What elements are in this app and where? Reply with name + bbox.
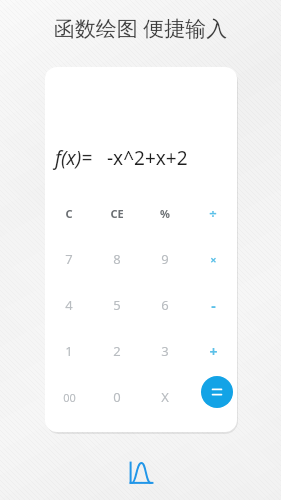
staticText: f(x)=	[55, 145, 93, 171]
button[interactable]: X	[141, 374, 189, 420]
staticText: CE	[110, 206, 124, 221]
button[interactable]: 3	[141, 328, 189, 374]
staticText: 9	[161, 250, 169, 268]
button[interactable]: 7	[45, 236, 93, 282]
button[interactable]: 00	[45, 374, 93, 420]
button[interactable]: C	[45, 190, 93, 236]
button[interactable]: Equals	[201, 376, 233, 408]
staticText: ×	[210, 252, 217, 267]
staticText: 函数绘图 便捷输入	[0, 14, 281, 43]
staticText: -	[211, 296, 216, 315]
staticText: ÷	[209, 204, 217, 222]
button[interactable]: %	[141, 190, 189, 236]
button[interactable]: -	[189, 282, 237, 328]
button[interactable]: 4	[45, 282, 93, 328]
button[interactable]: ÷	[189, 190, 237, 236]
staticText: C	[65, 206, 73, 221]
button[interactable]: 2	[93, 328, 141, 374]
staticText: 5	[113, 296, 121, 314]
staticText: 3	[161, 342, 169, 360]
staticText: 0	[113, 388, 121, 406]
staticText: 7	[65, 250, 73, 268]
button[interactable]: 9	[141, 236, 189, 282]
button[interactable]: CE	[93, 190, 141, 236]
button[interactable]: 5	[93, 282, 141, 328]
button[interactable]: 6	[141, 282, 189, 328]
staticText: 1	[65, 342, 73, 360]
staticText: %	[160, 206, 170, 221]
staticText: +	[209, 342, 218, 361]
staticText: 00	[63, 390, 76, 405]
button[interactable]: +	[189, 328, 237, 374]
button[interactable]: 0	[93, 374, 141, 420]
button[interactable]: Graph app logo	[126, 458, 156, 488]
staticText: 2	[113, 342, 121, 360]
button[interactable]: ×	[189, 236, 237, 282]
staticText: 6	[161, 296, 169, 314]
staticText: -x^2+x+2	[107, 145, 188, 171]
staticText: X	[161, 388, 169, 406]
staticText: 8	[113, 250, 121, 268]
staticText: 4	[65, 296, 73, 314]
button[interactable]: 1	[45, 328, 93, 374]
button[interactable]: 8	[93, 236, 141, 282]
